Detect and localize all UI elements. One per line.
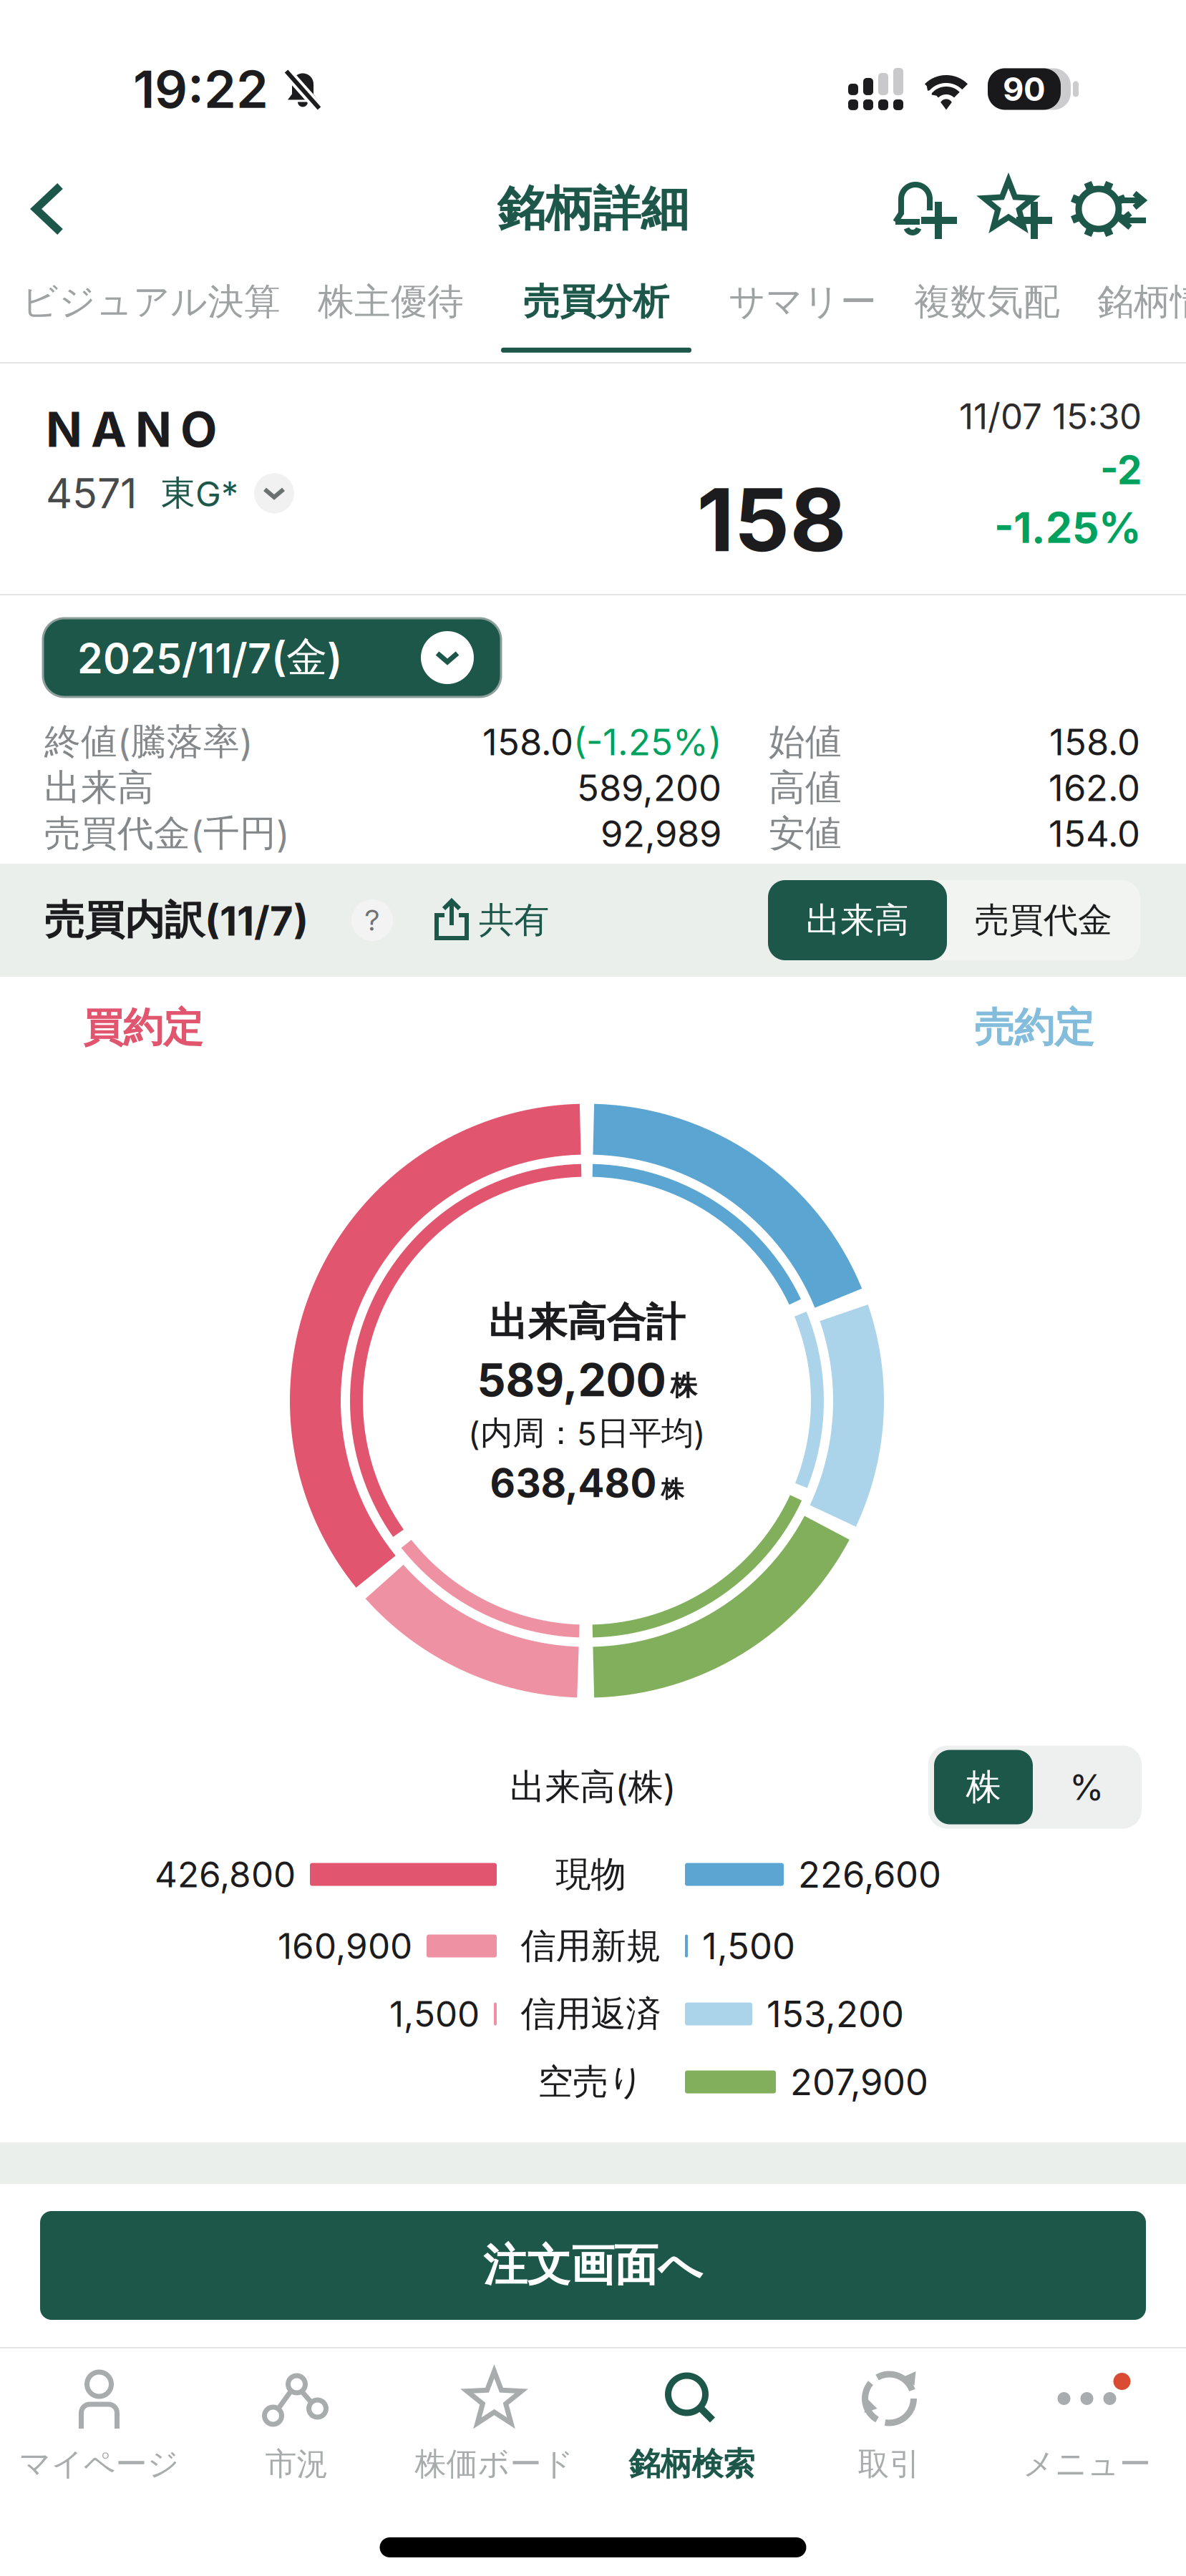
staticText: 株	[966, 1765, 1001, 1809]
staticText: 信用新規	[521, 1924, 661, 1968]
staticText: 複数気配	[914, 279, 1060, 325]
staticText: 注文画面へ	[483, 2238, 703, 2293]
button[interactable]: 注文画面へ	[40, 2211, 1146, 2320]
button[interactable]: 取引	[791, 2366, 988, 2484]
staticText: 19:22	[133, 58, 268, 120]
button[interactable]: サマリー	[729, 279, 877, 325]
staticText: 株	[661, 1475, 684, 1504]
staticText: 売買代金(千円)	[44, 811, 289, 856]
staticText: 安値	[769, 811, 842, 856]
staticText: 市況	[265, 2444, 328, 2484]
staticText: 売買分析	[523, 279, 669, 325]
staticText: 4571	[46, 468, 137, 518]
staticText: 162.0	[1049, 766, 1140, 810]
staticText: (内周：5日平均)	[468, 1413, 706, 1454]
staticText: メニュー	[1023, 2444, 1151, 2484]
staticText: 株価ボード	[415, 2444, 574, 2484]
button[interactable]: ヘルプ	[308, 899, 393, 941]
staticText: 共有	[479, 898, 549, 942]
staticText: 153,200	[767, 1992, 904, 2036]
staticText: -1.25%	[994, 502, 1142, 553]
button[interactable]: 共有	[393, 898, 549, 942]
staticText: 始値	[769, 719, 842, 765]
staticText: 銘柄検索	[629, 2444, 755, 2484]
staticText: 終値(騰落率)	[44, 719, 253, 765]
staticText: 226,600	[798, 1853, 941, 1896]
staticText: 11/07 15:30	[959, 395, 1142, 438]
button[interactable]: メニュー	[988, 2366, 1186, 2484]
button[interactable]: %	[1033, 1750, 1140, 1824]
button[interactable]: お気に入りに追加	[960, 176, 1053, 242]
button[interactable]: 戻る	[29, 180, 72, 238]
staticText: 東G*	[161, 472, 238, 515]
staticText: 92,989	[601, 812, 721, 856]
staticText: 2025/11/7(金)	[77, 632, 342, 683]
button[interactable]: 売買分析	[501, 279, 691, 353]
staticText: 90	[1003, 69, 1046, 109]
staticText: 空売り	[538, 2060, 644, 2104]
staticText: 株主優待	[318, 279, 464, 325]
button[interactable]: マイページ	[0, 2366, 198, 2484]
staticText: 取引	[858, 2444, 921, 2484]
staticText: 638,480	[490, 1459, 657, 1507]
staticText: 207,900	[790, 2060, 928, 2104]
staticText: 株	[670, 1369, 697, 1403]
staticText: 158.0	[1049, 720, 1140, 764]
staticText: 売買内訳(11/7)	[44, 895, 308, 945]
button[interactable]: 出来高	[768, 880, 947, 960]
button[interactable]: 市況	[198, 2366, 395, 2484]
staticText: %	[1069, 1766, 1104, 1808]
button[interactable]: 売買代金	[947, 880, 1140, 960]
staticText: 589,200	[477, 1353, 666, 1407]
staticText: 高値	[769, 765, 842, 811]
staticText: 160,900	[278, 1925, 412, 1967]
staticText: 589,200	[577, 766, 721, 810]
staticText: (-1.25%)	[573, 720, 721, 764]
button[interactable]: 銘柄情報	[1097, 279, 1186, 325]
staticText: 出来高	[44, 765, 154, 811]
button[interactable]: 4571	[46, 468, 294, 518]
staticText: サマリー	[729, 279, 877, 325]
button[interactable]: 株価ボード	[395, 2366, 593, 2484]
button[interactable]: 2025/11/7(金)	[43, 618, 501, 697]
staticText: 信用返済	[521, 1992, 661, 2036]
button[interactable]: 銘柄検索	[593, 2366, 791, 2484]
staticText: 現物	[556, 1852, 626, 1897]
staticText: 1,500	[702, 1924, 795, 1968]
button[interactable]: 株主優待	[318, 279, 464, 325]
staticText: 銘柄詳細	[497, 179, 689, 239]
staticText: 買約定	[83, 1002, 203, 1053]
button[interactable]: 株	[930, 1750, 1033, 1824]
button[interactable]: 通知を追加	[891, 176, 960, 242]
staticText: 出来高	[806, 899, 909, 942]
staticText: 426,800	[155, 1853, 296, 1896]
staticText: 158	[697, 467, 846, 572]
button[interactable]: 複数気配	[914, 279, 1060, 325]
staticText: 銘柄情報	[1097, 279, 1186, 325]
button[interactable]: ビジュアル決算	[21, 279, 281, 325]
staticText: 出来高(株)	[510, 1765, 676, 1809]
staticText: 売買代金	[975, 899, 1112, 942]
staticText: NANO	[46, 401, 217, 458]
staticText: 158.0	[482, 720, 573, 764]
button[interactable]: 設定	[1053, 176, 1146, 242]
staticText: ビジュアル決算	[21, 279, 281, 325]
staticText: 154.0	[1049, 812, 1140, 856]
staticText: マイページ	[19, 2444, 179, 2484]
staticText: -2	[1100, 446, 1142, 494]
staticText: 1,500	[389, 1993, 480, 2035]
staticText: 売約定	[974, 1002, 1094, 1053]
staticText: ?	[365, 903, 380, 938]
staticText: 出来高合計	[489, 1298, 685, 1347]
